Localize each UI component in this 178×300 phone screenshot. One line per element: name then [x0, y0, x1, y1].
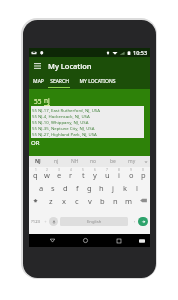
button[interactable]: Period: [130, 217, 138, 226]
button[interactable]: a: [36, 180, 47, 193]
staticText: t: [82, 170, 85, 180]
button[interactable]: n: [109, 193, 122, 207]
staticText: o: [129, 170, 134, 180]
button[interactable]: Voice input: [49, 217, 58, 226]
button[interactable]: m: [122, 193, 135, 207]
staticText: r: [69, 170, 73, 180]
staticText: nj: [54, 158, 59, 165]
button[interactable]: h: [95, 180, 107, 193]
staticText: l: [136, 183, 138, 193]
button[interactable]: x: [57, 193, 70, 207]
button[interactable]: 55 NJ-35, Neptune City, NJ, USA: [32, 125, 144, 131]
staticText: 55 NJ-27, Highland Park, NJ, USA: [32, 131, 97, 137]
staticText: 3: [58, 168, 60, 172]
staticText: 0: [142, 168, 144, 172]
button[interactable]: MY LOCATIONS: [72, 74, 122, 89]
staticText: 55: [34, 97, 44, 106]
staticText: My Location: [48, 61, 92, 71]
button[interactable]: ?123: [31, 217, 41, 226]
staticText: y: [93, 170, 97, 180]
button[interactable]: NH: [65, 156, 84, 167]
button[interactable]: c: [70, 193, 83, 207]
staticText: 8: [118, 168, 120, 172]
button[interactable]: y: [89, 167, 101, 180]
staticText: English: [87, 219, 102, 225]
button[interactable]: b: [96, 193, 109, 207]
staticText: d: [63, 183, 68, 193]
button[interactable]: i: [113, 167, 125, 180]
button[interactable]: v: [83, 193, 96, 207]
button[interactable]: no: [84, 156, 103, 167]
button[interactable]: More suggestions: [141, 156, 150, 167]
button[interactable]: my: [122, 156, 141, 167]
button[interactable]: 55 NJ-10, Whippany, NJ, USA: [32, 119, 144, 125]
staticText: 2: [46, 168, 48, 172]
button[interactable]: q: [30, 167, 41, 180]
staticText: g: [87, 183, 92, 193]
staticText: be: [110, 158, 116, 165]
button[interactable]: 55 NJ-27, Highland Park, NJ, USA: [32, 131, 144, 137]
staticText: 55 NJ-10, Whippany, NJ, USA: [32, 119, 89, 125]
button[interactable]: j: [107, 180, 119, 193]
button[interactable]: w: [41, 167, 53, 180]
staticText: k: [123, 183, 128, 193]
staticText: NJ: [35, 158, 41, 165]
button[interactable]: o: [125, 167, 137, 180]
staticText: NH: [71, 158, 79, 165]
staticText: i: [118, 170, 120, 180]
button[interactable]: Open navigation menu: [29, 57, 46, 74]
staticText: 5: [82, 168, 84, 172]
button[interactable]: r: [65, 167, 77, 180]
button[interactable]: SEARCH: [46, 74, 72, 89]
staticText: m: [125, 196, 133, 206]
button[interactable]: f: [71, 180, 83, 193]
button[interactable]: Hide keyboard: [136, 235, 147, 246]
button[interactable]: 55 NJ-17, East Rutherford, NJ, USA: [32, 107, 144, 113]
button[interactable]: Recent apps: [113, 235, 124, 246]
button[interactable]: g: [83, 180, 95, 193]
button[interactable]: s: [47, 180, 59, 193]
staticText: f: [76, 183, 79, 193]
button[interactable]: k: [119, 180, 131, 193]
staticText: nj: [44, 96, 50, 105]
button[interactable]: p: [137, 167, 149, 180]
staticText: 9: [130, 168, 132, 172]
staticText: ?123: [31, 219, 41, 225]
button[interactable]: 55 NJ-4, Hackensack, NJ, USA: [32, 113, 144, 119]
staticText: w: [44, 170, 50, 180]
button[interactable]: Search: [138, 217, 148, 226]
button[interactable]: NJ: [29, 156, 47, 167]
button[interactable]: d: [59, 180, 71, 193]
staticText: u: [105, 170, 110, 180]
staticText: SEARCH: [50, 78, 69, 85]
button[interactable]: Back: [47, 235, 58, 246]
button[interactable]: z: [44, 193, 57, 207]
staticText: 6: [94, 168, 96, 172]
staticText: x: [62, 196, 66, 206]
staticText: v: [88, 196, 92, 206]
button[interactable]: Shift: [29, 193, 41, 207]
button[interactable]: Comma: [41, 217, 49, 226]
staticText: 55 NJ-17, East Rutherford, NJ, USA: [32, 107, 100, 113]
staticText: MY LOCATIONS: [79, 78, 116, 85]
button[interactable]: MAP: [31, 74, 46, 89]
staticText: s: [51, 183, 55, 193]
button[interactable]: English: [60, 217, 128, 226]
staticText: h: [99, 183, 104, 193]
staticText: j: [112, 183, 114, 193]
button[interactable]: Home: [80, 235, 91, 246]
staticText: a: [39, 183, 44, 193]
staticText: 10:53: [133, 49, 148, 56]
staticText: MAP: [33, 78, 44, 85]
button[interactable]: t: [77, 167, 89, 180]
staticText: 55 NJ-4, Hackensack, NJ, USA: [32, 113, 90, 119]
button[interactable]: u: [101, 167, 113, 180]
staticText: my: [128, 158, 136, 165]
staticText: OR: [31, 139, 40, 147]
button[interactable]: nj: [47, 156, 65, 167]
button[interactable]: e: [53, 167, 65, 180]
button[interactable]: be: [103, 156, 122, 167]
button[interactable]: l: [131, 180, 143, 193]
staticText: b: [100, 196, 105, 206]
button[interactable]: Backspace: [137, 193, 150, 207]
